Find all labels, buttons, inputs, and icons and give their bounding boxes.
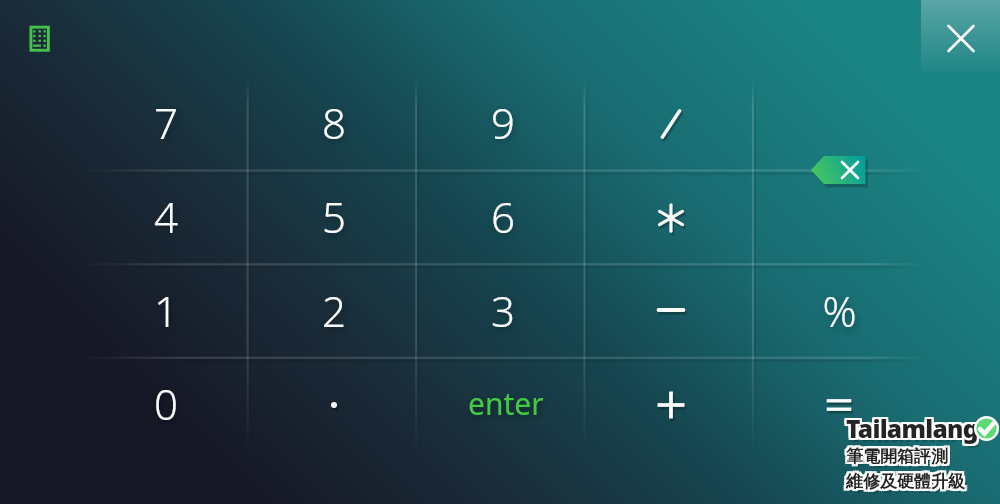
button[interactable]: 2	[250, 265, 418, 359]
staticText: 7	[154, 94, 178, 151]
button[interactable]	[587, 265, 755, 359]
button[interactable]: 7	[82, 77, 250, 171]
button[interactable]	[250, 358, 418, 452]
staticText: 5	[322, 188, 346, 245]
button[interactable]	[587, 171, 755, 265]
button[interactable]	[587, 358, 755, 452]
staticText: %	[822, 282, 857, 339]
button[interactable]: enter	[419, 358, 587, 452]
button[interactable]: 0	[82, 358, 250, 452]
staticText: 維修及硬體升級	[848, 469, 967, 490]
staticText: 9	[491, 94, 515, 151]
staticText: 維修及硬體升級	[844, 471, 963, 492]
button[interactable]: Calculator	[28, 24, 56, 58]
staticText: 維修及硬體升級	[848, 471, 967, 492]
button[interactable]: 6	[419, 171, 587, 265]
staticText: 維修及硬體升級	[846, 469, 965, 490]
staticText: enter	[468, 383, 544, 424]
staticText: 2	[322, 282, 346, 339]
button[interactable]: 5	[250, 171, 418, 265]
button[interactable]: 8	[250, 77, 418, 171]
staticText: 筆電開箱評測	[848, 448, 950, 469]
staticText: 筆電開箱評測	[848, 444, 950, 465]
staticText: 維修及硬體升級	[844, 469, 963, 490]
staticText: 維修及硬體升級	[844, 473, 963, 494]
staticText: 筆電開箱評測	[846, 444, 948, 465]
button[interactable]: 9	[419, 77, 587, 171]
staticText: 筆電開箱評測	[846, 448, 948, 469]
staticText: 維修及硬體升級	[849, 475, 968, 496]
staticText: 筆電開箱評測	[844, 444, 946, 465]
staticText: Tailamlang	[846, 414, 978, 447]
button[interactable]: Close	[921, 0, 1000, 72]
button[interactable]: 1	[82, 265, 250, 359]
staticText: 筆電開箱評測	[849, 450, 951, 471]
staticText: 筆電開箱評測	[846, 446, 948, 467]
staticText: 維修及硬體升級	[848, 473, 967, 494]
button[interactable]	[755, 358, 923, 452]
button[interactable]: %	[755, 265, 923, 359]
staticText: Tailamlang	[846, 412, 978, 445]
staticText: Tailamlang	[844, 414, 976, 447]
staticText: Tailamlang	[846, 410, 978, 443]
staticText: Tailamlang	[849, 416, 981, 449]
staticText: 維修及硬體升級	[846, 471, 965, 492]
staticText: 0	[154, 375, 178, 432]
staticText: 筆電開箱評測	[844, 448, 946, 469]
button[interactable]	[587, 77, 755, 171]
staticText: 4	[154, 188, 178, 245]
button[interactable]: 4	[82, 171, 250, 265]
staticText: Tailamlang	[844, 412, 976, 445]
staticText: 6	[491, 188, 515, 245]
staticText: Tailamlang	[848, 414, 980, 447]
staticText: 8	[322, 94, 346, 151]
staticText: Tailamlang	[848, 410, 980, 443]
staticText: Tailamlang	[848, 412, 980, 445]
staticText: 3	[491, 282, 515, 339]
staticText: 1	[154, 282, 178, 339]
button[interactable]: 3	[419, 265, 587, 359]
button[interactable]: Backspace	[811, 156, 866, 185]
staticText: 筆電開箱評測	[844, 446, 946, 467]
staticText: 筆電開箱評測	[848, 446, 950, 467]
staticText: 維修及硬體升級	[846, 473, 965, 494]
staticText: Tailamlang	[844, 410, 976, 443]
